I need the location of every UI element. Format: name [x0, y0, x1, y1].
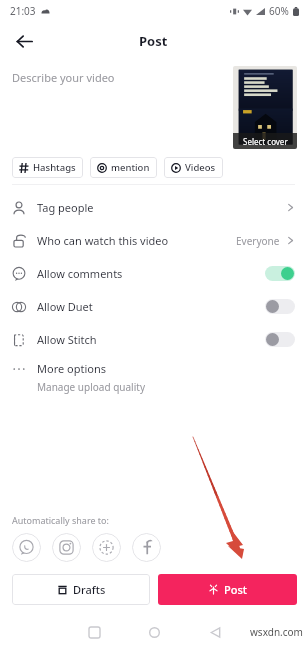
button[interactable]: mention — [90, 157, 157, 178]
button[interactable]: Story — [92, 533, 121, 562]
staticText: Hashtags — [33, 161, 76, 174]
button[interactable]: Post — [158, 574, 297, 605]
button[interactable]: Allow Duet — [0, 290, 307, 323]
staticText: Allow Duet — [37, 299, 265, 314]
button[interactable]: Tag people — [0, 191, 307, 224]
staticText: Who can watch this video — [37, 233, 236, 248]
staticText: 21:03 — [10, 4, 36, 18]
button[interactable]: Select cover — [233, 66, 297, 149]
button[interactable]: Allow Duet — [265, 299, 295, 314]
button[interactable]: Hashtags — [12, 157, 83, 178]
staticText: Videos — [185, 161, 216, 174]
button[interactable]: Facebook — [132, 533, 161, 562]
button[interactable]: Back — [203, 620, 227, 644]
button[interactable]: Allow comments — [0, 257, 307, 290]
button[interactable]: Allow comments — [265, 266, 295, 281]
button[interactable]: WhatsApp — [12, 533, 41, 562]
staticText: Post — [139, 32, 168, 50]
button[interactable]: Videos — [164, 157, 223, 178]
button[interactable]: Drafts — [12, 574, 150, 605]
staticText: Select cover — [243, 136, 288, 147]
button[interactable]: Who can watch this video — [0, 224, 307, 257]
staticText: Tag people — [37, 200, 286, 215]
button[interactable]: Home — [142, 620, 166, 644]
staticText: Post — [224, 582, 247, 597]
staticText: More options — [37, 361, 106, 376]
staticText: Allow Stitch — [37, 332, 265, 347]
button[interactable]: More options — [0, 356, 307, 399]
button[interactable]: Back — [8, 25, 40, 57]
button[interactable]: Recent apps — [82, 620, 106, 644]
staticText: wsxdn.com — [250, 625, 303, 639]
staticText: Automatically share to: — [12, 514, 109, 526]
staticText: Allow comments — [37, 266, 265, 281]
button[interactable]: Allow Stitch — [265, 332, 295, 347]
staticText: mention — [111, 161, 150, 174]
staticText: Manage upload quality — [37, 380, 145, 394]
button[interactable]: Instagram — [52, 533, 81, 562]
button[interactable]: Allow Stitch — [0, 323, 307, 356]
staticText: Everyone — [236, 234, 280, 248]
staticText: Describe your video — [12, 70, 233, 85]
staticText: 60% — [269, 4, 289, 18]
staticText: Drafts — [73, 582, 106, 597]
